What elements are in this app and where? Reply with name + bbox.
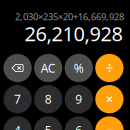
staticText: 4 [14,122,21,130]
staticText: 6 [75,122,82,130]
staticText: 5 [45,122,52,130]
button[interactable]: AC [34,54,62,82]
button[interactable]: Delete [3,54,32,82]
staticText: 9 [75,91,82,107]
staticText: 8 [45,91,52,107]
button[interactable]: 6 [65,116,93,130]
staticText: % [74,60,84,76]
button[interactable]: % [65,54,93,82]
button[interactable]: Minus [95,116,123,130]
button[interactable]: 7 [3,85,32,113]
button[interactable]: Multiply [95,85,123,113]
staticText: AC [41,60,56,76]
staticText: 2,030×235×20+16,669,928 [15,10,124,23]
button[interactable]: 4 [3,116,32,130]
button[interactable]: 5 [34,116,62,130]
button[interactable]: 8 [34,85,62,113]
staticText: 26,210,928 [24,20,122,47]
staticText: 7 [14,91,21,107]
button[interactable]: 9 [65,85,93,113]
button[interactable]: Divide [95,54,123,82]
